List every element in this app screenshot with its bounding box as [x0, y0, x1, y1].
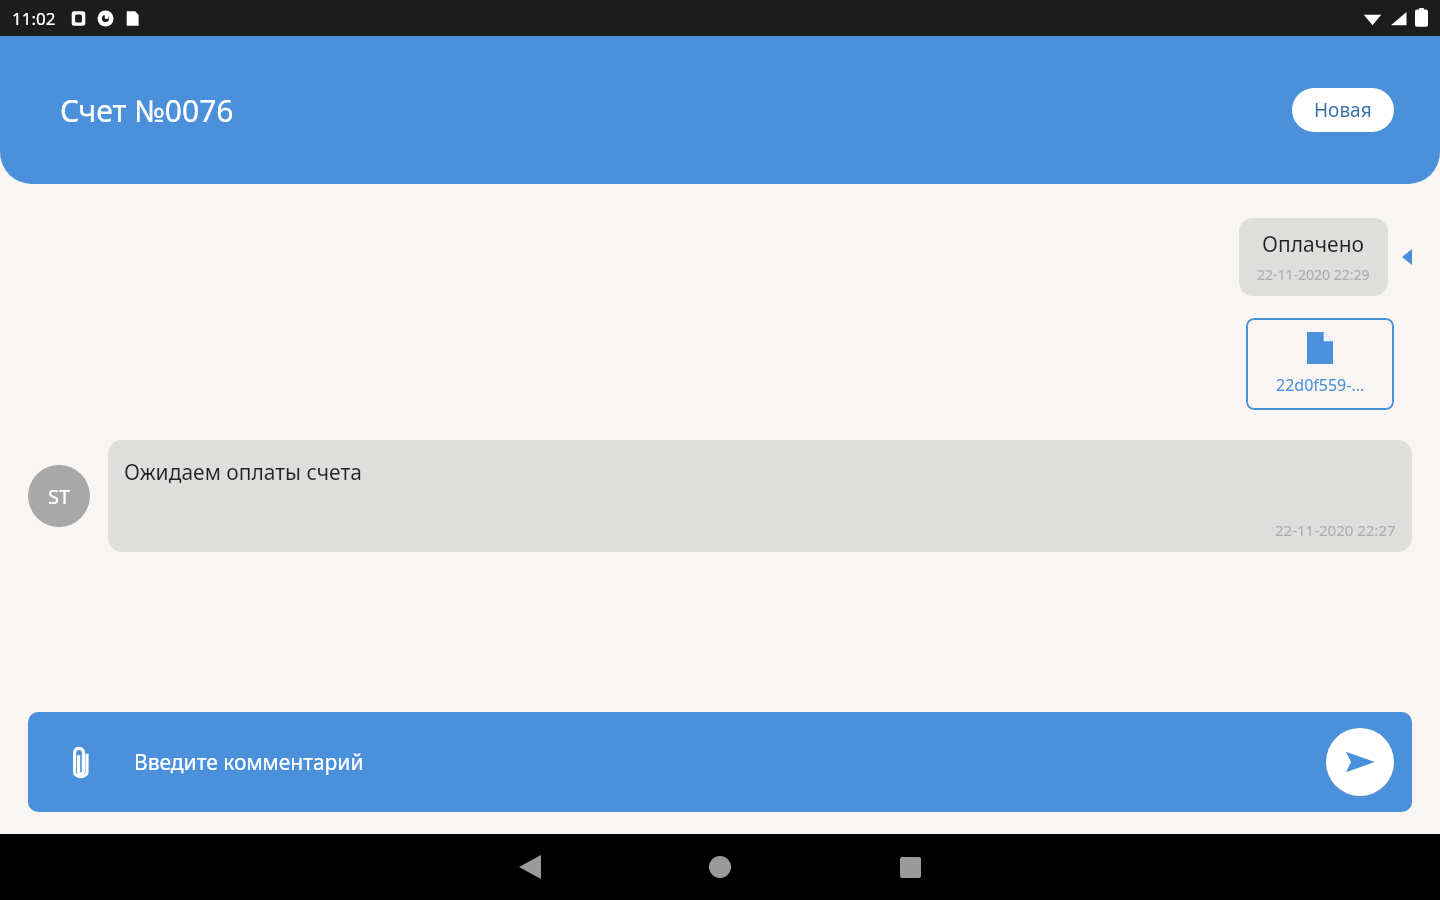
staticText: Новая [1314, 97, 1372, 123]
staticText: 22-11-2020 22:27 [1275, 520, 1396, 540]
button[interactable]: Send [1326, 728, 1394, 796]
staticText: 22-11-2020 22:29 [1257, 265, 1370, 284]
button[interactable]: Back [506, 843, 554, 891]
button[interactable]: Attach file [58, 739, 104, 785]
staticText: Ожидаем оплаты счета [124, 458, 362, 487]
staticText: 11:02 [12, 7, 56, 30]
button[interactable]: Оплачено [1239, 218, 1388, 296]
button[interactable]: 22d0f559-... [1246, 318, 1394, 410]
staticText: ST [48, 483, 71, 510]
button[interactable]: Recents [886, 843, 934, 891]
staticText: Введите комментарий [134, 748, 364, 777]
staticText: Счет №0076 [60, 90, 234, 131]
staticText: 22d0f559-... [1276, 374, 1365, 396]
button[interactable]: Новая [1292, 88, 1394, 132]
button[interactable]: Ожидаем оплаты счета [108, 440, 1412, 552]
button[interactable]: Home [696, 843, 744, 891]
staticText: Оплачено [1262, 230, 1365, 259]
